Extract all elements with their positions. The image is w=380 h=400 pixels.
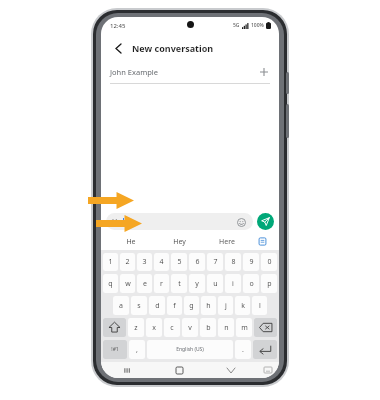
button[interactable]: 7: [207, 253, 223, 271]
button[interactable]: a: [113, 296, 129, 315]
button[interactable]: Enter: [253, 340, 277, 359]
staticText: 2: [125, 257, 130, 267]
button[interactable]: Hide keyboard: [205, 362, 257, 378]
staticText: p: [267, 279, 272, 289]
button[interactable]: 8: [225, 253, 241, 271]
button[interactable]: u: [207, 274, 223, 293]
button[interactable]: Recents: [101, 362, 153, 378]
staticText: 8: [231, 257, 236, 267]
staticText: c: [170, 323, 174, 333]
staticText: a: [119, 301, 123, 311]
button[interactable]: t: [171, 274, 187, 293]
button[interactable]: Backspace: [254, 318, 277, 337]
staticText: t: [178, 279, 181, 289]
button[interactable]: Hey: [155, 233, 203, 250]
button[interactable]: o: [243, 274, 259, 293]
button[interactable]: h: [201, 296, 216, 315]
button[interactable]: Shift: [103, 318, 126, 337]
staticText: 1: [108, 257, 113, 267]
button[interactable]: s: [131, 296, 147, 315]
button[interactable]: l: [252, 296, 267, 315]
button[interactable]: He: [106, 213, 253, 230]
staticText: x: [152, 323, 156, 333]
button[interactable]: z: [128, 318, 144, 337]
button[interactable]: Clipboard: [251, 233, 273, 250]
staticText: 5: [177, 257, 182, 267]
staticText: k: [241, 301, 245, 311]
staticText: He: [126, 237, 136, 247]
staticText: e: [143, 279, 147, 289]
button[interactable]: b: [200, 318, 216, 337]
staticText: u: [213, 279, 218, 289]
staticText: 4: [159, 257, 164, 267]
button[interactable]: English (US): [147, 340, 233, 359]
button[interactable]: .: [235, 340, 251, 359]
button[interactable]: 2: [120, 253, 135, 271]
staticText: l: [259, 301, 261, 311]
button[interactable]: g: [184, 296, 199, 315]
staticText: r: [160, 279, 163, 289]
button[interactable]: v: [182, 318, 198, 337]
staticText: !#1: [111, 346, 119, 353]
button[interactable]: Back: [110, 40, 126, 56]
staticText: i: [232, 279, 234, 289]
staticText: q: [108, 279, 113, 289]
staticText: y: [195, 279, 199, 289]
button[interactable]: !#1: [103, 340, 127, 359]
button[interactable]: m: [236, 318, 252, 337]
staticText: English (US): [176, 346, 204, 353]
button[interactable]: r: [154, 274, 169, 293]
button[interactable]: He: [107, 233, 155, 250]
button[interactable]: 1: [103, 253, 118, 271]
button[interactable]: Keyboard layout: [257, 362, 279, 378]
button[interactable]: 0: [261, 253, 277, 271]
staticText: 7: [213, 257, 218, 267]
staticText: .: [242, 345, 244, 355]
button[interactable]: Home: [153, 362, 205, 378]
staticText: w: [125, 279, 131, 289]
staticText: John Example: [110, 67, 158, 77]
button[interactable]: i: [225, 274, 241, 293]
staticText: 12:45: [110, 22, 126, 30]
button[interactable]: Send: [257, 213, 274, 230]
staticText: 3: [142, 257, 147, 267]
button[interactable]: w: [120, 274, 135, 293]
staticText: f: [173, 301, 176, 311]
button[interactable]: d: [149, 296, 165, 315]
button[interactable]: p: [261, 274, 277, 293]
button[interactable]: 4: [154, 253, 169, 271]
button[interactable]: John Example: [101, 61, 279, 83]
button[interactable]: 6: [189, 253, 205, 271]
button[interactable]: c: [164, 318, 180, 337]
button[interactable]: Emoji: [235, 216, 247, 228]
button[interactable]: j: [218, 296, 233, 315]
button[interactable]: Add recipient: [258, 66, 270, 78]
staticText: z: [134, 323, 138, 333]
button[interactable]: e: [137, 274, 152, 293]
button[interactable]: ,: [129, 340, 145, 359]
button[interactable]: q: [103, 274, 118, 293]
button[interactable]: Here: [203, 233, 251, 250]
staticText: New conversation: [132, 42, 214, 54]
button[interactable]: k: [235, 296, 250, 315]
staticText: 6: [195, 257, 200, 267]
button[interactable]: y: [189, 274, 205, 293]
button[interactable]: 3: [137, 253, 152, 271]
button[interactable]: n: [218, 318, 234, 337]
staticText: m: [241, 323, 248, 333]
staticText: 5G: [233, 22, 240, 29]
staticText: j: [225, 301, 227, 311]
staticText: ,: [136, 345, 138, 355]
staticText: 100%: [251, 22, 264, 29]
staticText: Hey: [173, 237, 186, 247]
button[interactable]: 9: [243, 253, 259, 271]
staticText: g: [189, 301, 194, 311]
staticText: Here: [219, 237, 235, 247]
staticText: s: [137, 301, 141, 311]
button[interactable]: 5: [171, 253, 187, 271]
staticText: h: [206, 301, 211, 311]
staticText: d: [155, 301, 160, 311]
button[interactable]: x: [146, 318, 162, 337]
button[interactable]: f: [167, 296, 182, 315]
staticText: b: [206, 323, 211, 333]
